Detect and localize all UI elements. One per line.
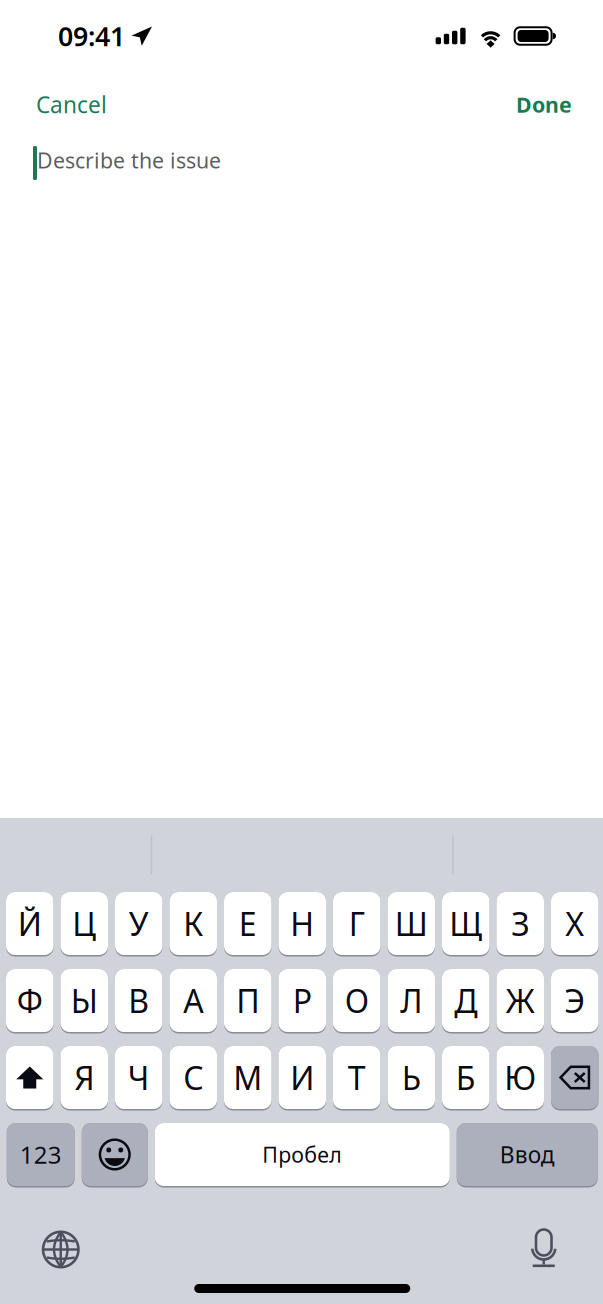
- button[interactable]: С: [169, 1046, 217, 1110]
- button[interactable]: И: [278, 1046, 326, 1110]
- staticText: Cancel: [36, 89, 107, 119]
- staticText: В: [128, 979, 149, 1022]
- staticText: Ф: [17, 979, 43, 1022]
- button[interactable]: О: [333, 969, 380, 1033]
- button[interactable]: Ю: [496, 1046, 544, 1110]
- button[interactable]: Delete: [551, 1046, 598, 1110]
- button[interactable]: Щ: [442, 892, 489, 956]
- button[interactable]: Г: [333, 892, 380, 956]
- button[interactable]: П: [224, 969, 271, 1033]
- staticText: Э: [564, 979, 585, 1022]
- staticText: С: [183, 1056, 203, 1099]
- button[interactable]: З: [496, 892, 544, 956]
- button[interactable]: Ч: [115, 1046, 162, 1110]
- button[interactable]: Ф: [6, 969, 53, 1033]
- button[interactable]: Dictation: [518, 1216, 570, 1282]
- staticText: Describe the issue: [37, 146, 221, 174]
- button[interactable]: Т: [333, 1046, 380, 1110]
- button[interactable]: У: [115, 892, 162, 956]
- staticText: Ж: [506, 979, 535, 1022]
- button[interactable]: Пробел: [155, 1123, 450, 1187]
- button[interactable]: К: [169, 892, 217, 956]
- staticText: Я: [74, 1056, 94, 1099]
- staticText: А: [183, 979, 203, 1022]
- staticText: Пробел: [262, 1140, 342, 1169]
- button[interactable]: Ж: [496, 969, 544, 1033]
- button[interactable]: Shift: [6, 1046, 53, 1110]
- staticText: Т: [348, 1056, 366, 1099]
- staticText: Щ: [449, 902, 482, 945]
- staticText: Ю: [504, 1056, 536, 1099]
- button[interactable]: Е: [224, 892, 271, 956]
- button[interactable]: А: [169, 969, 217, 1033]
- staticText: Е: [239, 902, 257, 945]
- staticText: М: [233, 1056, 262, 1099]
- button[interactable]: Н: [278, 892, 326, 956]
- staticText: Ь: [402, 1056, 421, 1099]
- button[interactable]: Х: [551, 892, 598, 956]
- button[interactable]: Emoji: [82, 1123, 148, 1187]
- button[interactable]: Д: [442, 969, 489, 1033]
- staticText: Ц: [72, 902, 96, 945]
- staticText: О: [345, 979, 369, 1022]
- staticText: Г: [349, 902, 365, 945]
- staticText: 123: [20, 1139, 62, 1170]
- button[interactable]: Ц: [60, 892, 108, 956]
- button[interactable]: В: [115, 969, 162, 1033]
- staticText: Р: [293, 979, 312, 1022]
- staticText: Done: [516, 90, 572, 119]
- button[interactable]: Р: [278, 969, 326, 1033]
- button[interactable]: Done: [516, 90, 572, 119]
- button[interactable]: Л: [387, 969, 435, 1033]
- staticText: Б: [456, 1056, 476, 1099]
- button[interactable]: Э: [551, 969, 598, 1033]
- button[interactable]: Й: [6, 892, 53, 956]
- button[interactable]: 123: [7, 1123, 75, 1187]
- staticText: И: [290, 1056, 314, 1099]
- staticText: Ввод: [500, 1139, 555, 1169]
- button[interactable]: Ш: [387, 892, 435, 956]
- staticText: Д: [454, 979, 477, 1022]
- staticText: Й: [18, 902, 42, 945]
- button[interactable]: Next keyboard: [35, 1223, 87, 1275]
- staticText: З: [511, 902, 529, 945]
- staticText: Ч: [128, 1056, 150, 1099]
- button[interactable]: Ввод: [457, 1123, 598, 1187]
- button[interactable]: Ь: [387, 1046, 435, 1110]
- staticText: П: [236, 979, 259, 1022]
- staticText: К: [183, 902, 203, 945]
- staticText: 09:41: [58, 18, 125, 54]
- staticText: У: [129, 902, 149, 945]
- staticText: Ы: [71, 979, 98, 1022]
- staticText: Н: [290, 902, 314, 945]
- button[interactable]: М: [224, 1046, 271, 1110]
- button[interactable]: Ы: [60, 969, 108, 1033]
- button[interactable]: Cancel: [36, 89, 107, 119]
- staticText: Ш: [395, 902, 428, 945]
- button[interactable]: Б: [442, 1046, 489, 1110]
- staticText: Л: [400, 979, 422, 1022]
- button[interactable]: Я: [60, 1046, 108, 1110]
- staticText: Х: [565, 902, 584, 945]
